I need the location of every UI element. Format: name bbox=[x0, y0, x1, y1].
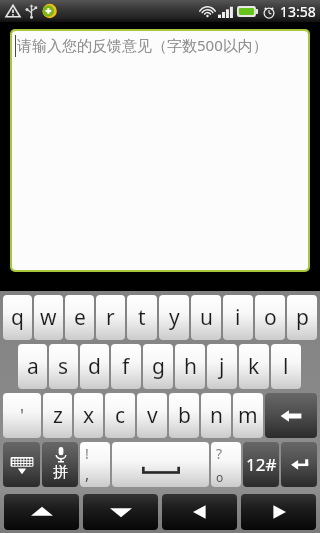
button[interactable]: k bbox=[239, 344, 269, 389]
button[interactable]: u bbox=[191, 295, 221, 340]
staticText: q bbox=[11, 303, 24, 332]
button[interactable]: t bbox=[127, 295, 157, 340]
staticText: w bbox=[40, 303, 57, 332]
button[interactable]: Right bbox=[241, 494, 316, 530]
button[interactable]: q bbox=[3, 295, 32, 340]
staticText: c bbox=[115, 401, 126, 430]
button[interactable]: Numbers and symbols bbox=[243, 442, 279, 487]
button[interactable]: Down bbox=[83, 494, 158, 530]
button[interactable]: g bbox=[143, 344, 173, 389]
button[interactable]: w bbox=[34, 295, 63, 340]
staticText: b bbox=[178, 401, 191, 430]
button[interactable]: c bbox=[105, 393, 135, 438]
staticText: v bbox=[147, 401, 158, 430]
button[interactable]: r bbox=[96, 295, 125, 340]
staticText: l bbox=[283, 352, 289, 381]
staticText: o bbox=[264, 303, 277, 332]
button[interactable]: v bbox=[137, 393, 167, 438]
button[interactable]: z bbox=[43, 393, 72, 438]
button[interactable]: ' bbox=[3, 393, 41, 438]
button[interactable]: Hide keyboard bbox=[3, 442, 40, 487]
button[interactable]: f bbox=[111, 344, 141, 389]
staticText: k bbox=[248, 352, 260, 381]
staticText: r bbox=[106, 303, 115, 332]
staticText: z bbox=[53, 401, 63, 430]
button[interactable]: h bbox=[175, 344, 205, 389]
button[interactable]: Voice input, Pinyin bbox=[42, 442, 78, 487]
staticText: s bbox=[58, 352, 69, 381]
button[interactable]: m bbox=[233, 393, 263, 438]
staticText: h bbox=[184, 352, 197, 381]
staticText: a bbox=[27, 352, 39, 381]
button[interactable]: b bbox=[169, 393, 199, 438]
button[interactable]: j bbox=[207, 344, 237, 389]
button[interactable]: Question mark and o bbox=[211, 442, 241, 487]
button[interactable]: i bbox=[223, 295, 253, 340]
staticText: i bbox=[235, 303, 241, 332]
staticText: u bbox=[200, 303, 213, 332]
button[interactable]: o bbox=[255, 295, 285, 340]
staticText: p bbox=[296, 303, 309, 332]
button[interactable]: e bbox=[65, 295, 94, 340]
button[interactable]: n bbox=[201, 393, 231, 438]
staticText: t bbox=[138, 303, 146, 332]
staticText: ? bbox=[216, 444, 223, 463]
button[interactable]: 请输入您的反馈意见（字数500以内） bbox=[12, 31, 308, 270]
staticText: x bbox=[83, 401, 95, 430]
staticText: 请输入您的反馈意见（字数500以内） bbox=[17, 35, 268, 55]
button[interactable]: Exclamation and comma bbox=[80, 442, 110, 487]
staticText: e bbox=[74, 303, 86, 332]
staticText: y bbox=[169, 303, 180, 332]
button[interactable]: x bbox=[74, 393, 103, 438]
button[interactable]: Enter bbox=[281, 442, 317, 487]
staticText: f bbox=[122, 352, 130, 381]
staticText: g bbox=[152, 352, 165, 381]
button[interactable]: a bbox=[18, 344, 47, 389]
staticText: j bbox=[219, 352, 225, 381]
button[interactable]: Backspace bbox=[265, 393, 317, 438]
button[interactable]: Space bbox=[112, 442, 209, 487]
staticText: ' bbox=[20, 403, 25, 428]
button[interactable]: d bbox=[80, 344, 109, 389]
staticText: ! bbox=[85, 444, 89, 463]
staticText: n bbox=[210, 401, 223, 430]
staticText: , bbox=[85, 463, 90, 485]
staticText: 13:58 bbox=[280, 2, 316, 21]
button[interactable]: l bbox=[271, 344, 301, 389]
button[interactable]: Left bbox=[162, 494, 237, 530]
staticText: 拼 bbox=[53, 463, 68, 482]
staticText: d bbox=[88, 352, 101, 381]
staticText: 12# bbox=[246, 453, 277, 476]
button[interactable]: Up bbox=[4, 494, 79, 530]
staticText: o bbox=[216, 469, 224, 485]
button[interactable]: y bbox=[159, 295, 189, 340]
staticText: m bbox=[238, 401, 258, 430]
button[interactable]: p bbox=[287, 295, 317, 340]
button[interactable]: s bbox=[49, 344, 78, 389]
